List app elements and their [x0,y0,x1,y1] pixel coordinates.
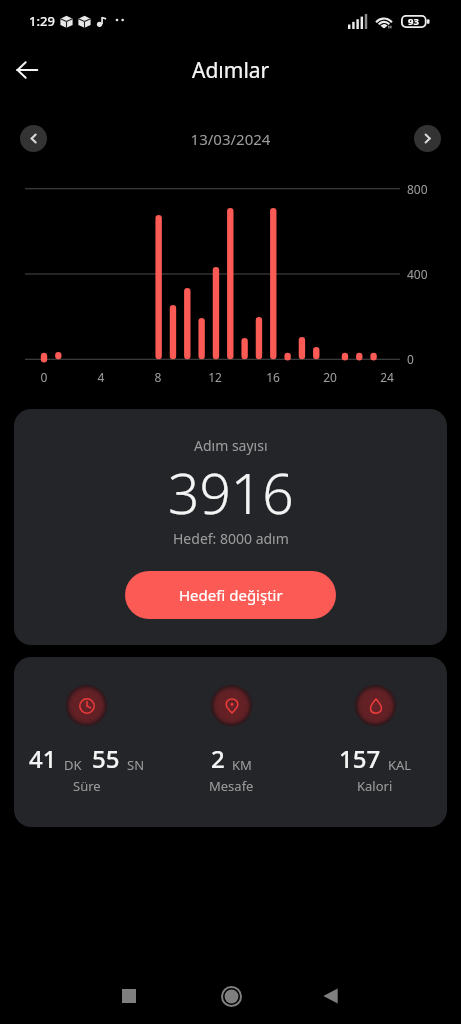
staticText: KAL [388,756,412,774]
staticText: 0 [407,351,414,367]
staticText: KM [232,756,252,774]
staticText: Adım sayısı [194,436,268,455]
staticText: 2 [211,742,225,775]
staticText: 3916 [168,455,294,530]
staticText: 20 [316,369,344,385]
staticText: 41 [29,742,57,775]
button[interactable]: Back [5,48,49,92]
staticText: Hedefi değiştir [179,585,283,605]
staticText: SN [127,756,145,774]
button[interactable]: Hedefi değiştir [125,571,336,619]
staticText: Süre [73,777,101,795]
staticText: 8 [144,369,172,385]
staticText: 24 [373,369,401,385]
staticText: 93 [408,15,419,28]
staticText: 16 [259,369,287,385]
staticText: 1:29 [29,12,55,30]
button[interactable]: Recents [105,972,153,1020]
button[interactable]: Previous day [20,125,47,152]
staticText: 4 [87,369,115,385]
staticText: Adımlar [192,56,270,85]
staticText: 800 [407,181,428,197]
button[interactable]: Home [207,972,255,1020]
staticText: Hedef: 8000 adım [173,529,289,548]
staticText: 12 [201,369,229,385]
button[interactable]: Next day [414,125,441,152]
staticText: 55 [92,742,120,775]
staticText: 0 [30,369,58,385]
staticText: 13/03/2024 [47,129,414,149]
staticText: 157 [339,742,381,775]
staticText: Mesafe [209,777,254,795]
staticText: 400 [407,266,428,282]
staticText: DK [64,756,82,774]
staticText: Kalori [357,777,393,795]
button[interactable]: Back [306,972,354,1020]
